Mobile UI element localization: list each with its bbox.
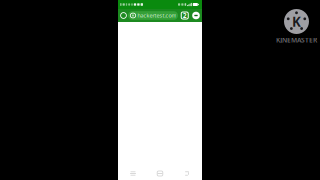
button[interactable]: Home [119, 9, 128, 22]
staticText: KINEMASTER [276, 35, 317, 44]
button[interactable]: hackertest.com [128, 11, 178, 20]
button[interactable]: Back [176, 167, 198, 180]
button[interactable]: Tabs [181, 12, 188, 19]
staticText: hackertest.com [137, 12, 176, 19]
staticText: K [292, 13, 301, 30]
button[interactable]: Menu [192, 11, 200, 19]
staticText: 2 [183, 11, 187, 20]
button[interactable]: Home [149, 167, 171, 180]
button[interactable]: Recent apps [122, 167, 144, 180]
